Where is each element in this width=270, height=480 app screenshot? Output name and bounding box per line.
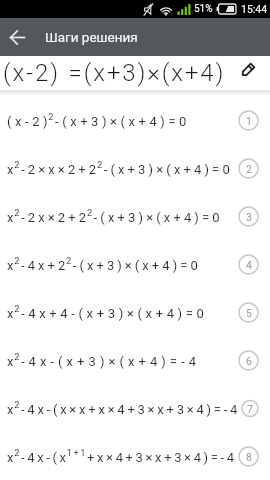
button[interactable]: x2-4x-(x×x+x×4+3×x+3×4)=-4 [0, 384, 270, 432]
staticText: x2-4x-(x+3)×(x+4)=-4 [7, 351, 201, 370]
staticText: 15:44 [241, 3, 268, 15]
staticText: 6 [246, 355, 252, 367]
staticText: 4 [246, 259, 252, 271]
staticText: x2-2x×2+22-(x+3)×(x+4)=0 [7, 207, 223, 226]
staticText: x2-4x-(x×x+x×4+3×x+3×4)=-4 [7, 399, 241, 418]
button[interactable]: x2-2×x×2+22-(x+3)×(x+4)=0 [0, 144, 270, 192]
staticText: x2-4x+4-(x+3)×(x+4)=0 [7, 303, 208, 322]
button[interactable]: x2-2x×2+22-(x+3)×(x+4)=0 [0, 192, 270, 240]
button[interactable]: x2-4x+22-(x+3)×(x+4)=0 [0, 240, 270, 288]
staticText: x2-2×x×2+22-(x+3)×(x+4)=0 [7, 159, 233, 178]
staticText: 51% [194, 3, 213, 15]
staticText: (x-2)2=(x+3)×(x+4) [3, 56, 226, 87]
staticText: 7 [247, 403, 253, 415]
staticText: 1 [246, 115, 252, 127]
button[interactable] [4, 24, 30, 50]
button[interactable]: x2-4x+4-(x+3)×(x+4)=0 [0, 288, 270, 336]
button[interactable] [238, 59, 260, 81]
button[interactable]: x2-4x-(x1+1+x×4+3×x+3×4)=-4 [0, 432, 270, 480]
button[interactable]: x2-4x-(x+3)×(x+4)=-4 [0, 336, 270, 384]
staticText: 3 [246, 211, 252, 223]
button[interactable]: (x-2)2-(x+3)×(x+4)=0 [0, 96, 270, 144]
staticText: 8 [246, 451, 252, 463]
staticText: (x-2)2-(x+3)×(x+4)=0 [7, 111, 190, 130]
staticText: 5 [246, 307, 252, 319]
staticText: 2 [246, 163, 252, 175]
staticText: x2-4x+22-(x+3)×(x+4)=0 [7, 255, 201, 274]
staticText: x2-4x-(x1+1+x×4+3×x+3×4)=-4 [7, 447, 237, 466]
staticText: Шаги решения [45, 29, 138, 45]
